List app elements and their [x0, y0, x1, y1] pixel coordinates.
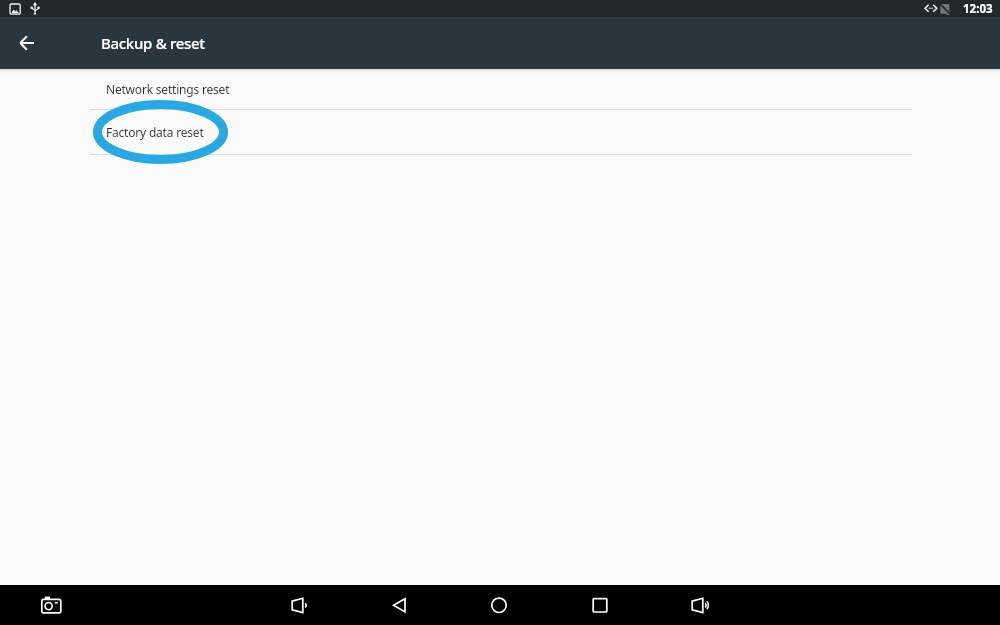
button[interactable]	[375, 585, 423, 625]
staticText: Factory data reset	[106, 124, 204, 140]
button[interactable]	[274, 585, 322, 625]
staticText: 12:03	[963, 1, 993, 17]
button[interactable]	[475, 585, 523, 625]
button[interactable]	[0, 17, 54, 69]
staticText: Backup & reset	[101, 33, 205, 53]
button[interactable]	[576, 585, 624, 625]
staticText: Network settings reset	[106, 81, 230, 97]
button[interactable]: Network settings reset	[0, 69, 1000, 109]
button[interactable]	[674, 585, 722, 625]
button[interactable]: Factory data reset	[0, 110, 1000, 154]
button[interactable]	[26, 585, 74, 625]
